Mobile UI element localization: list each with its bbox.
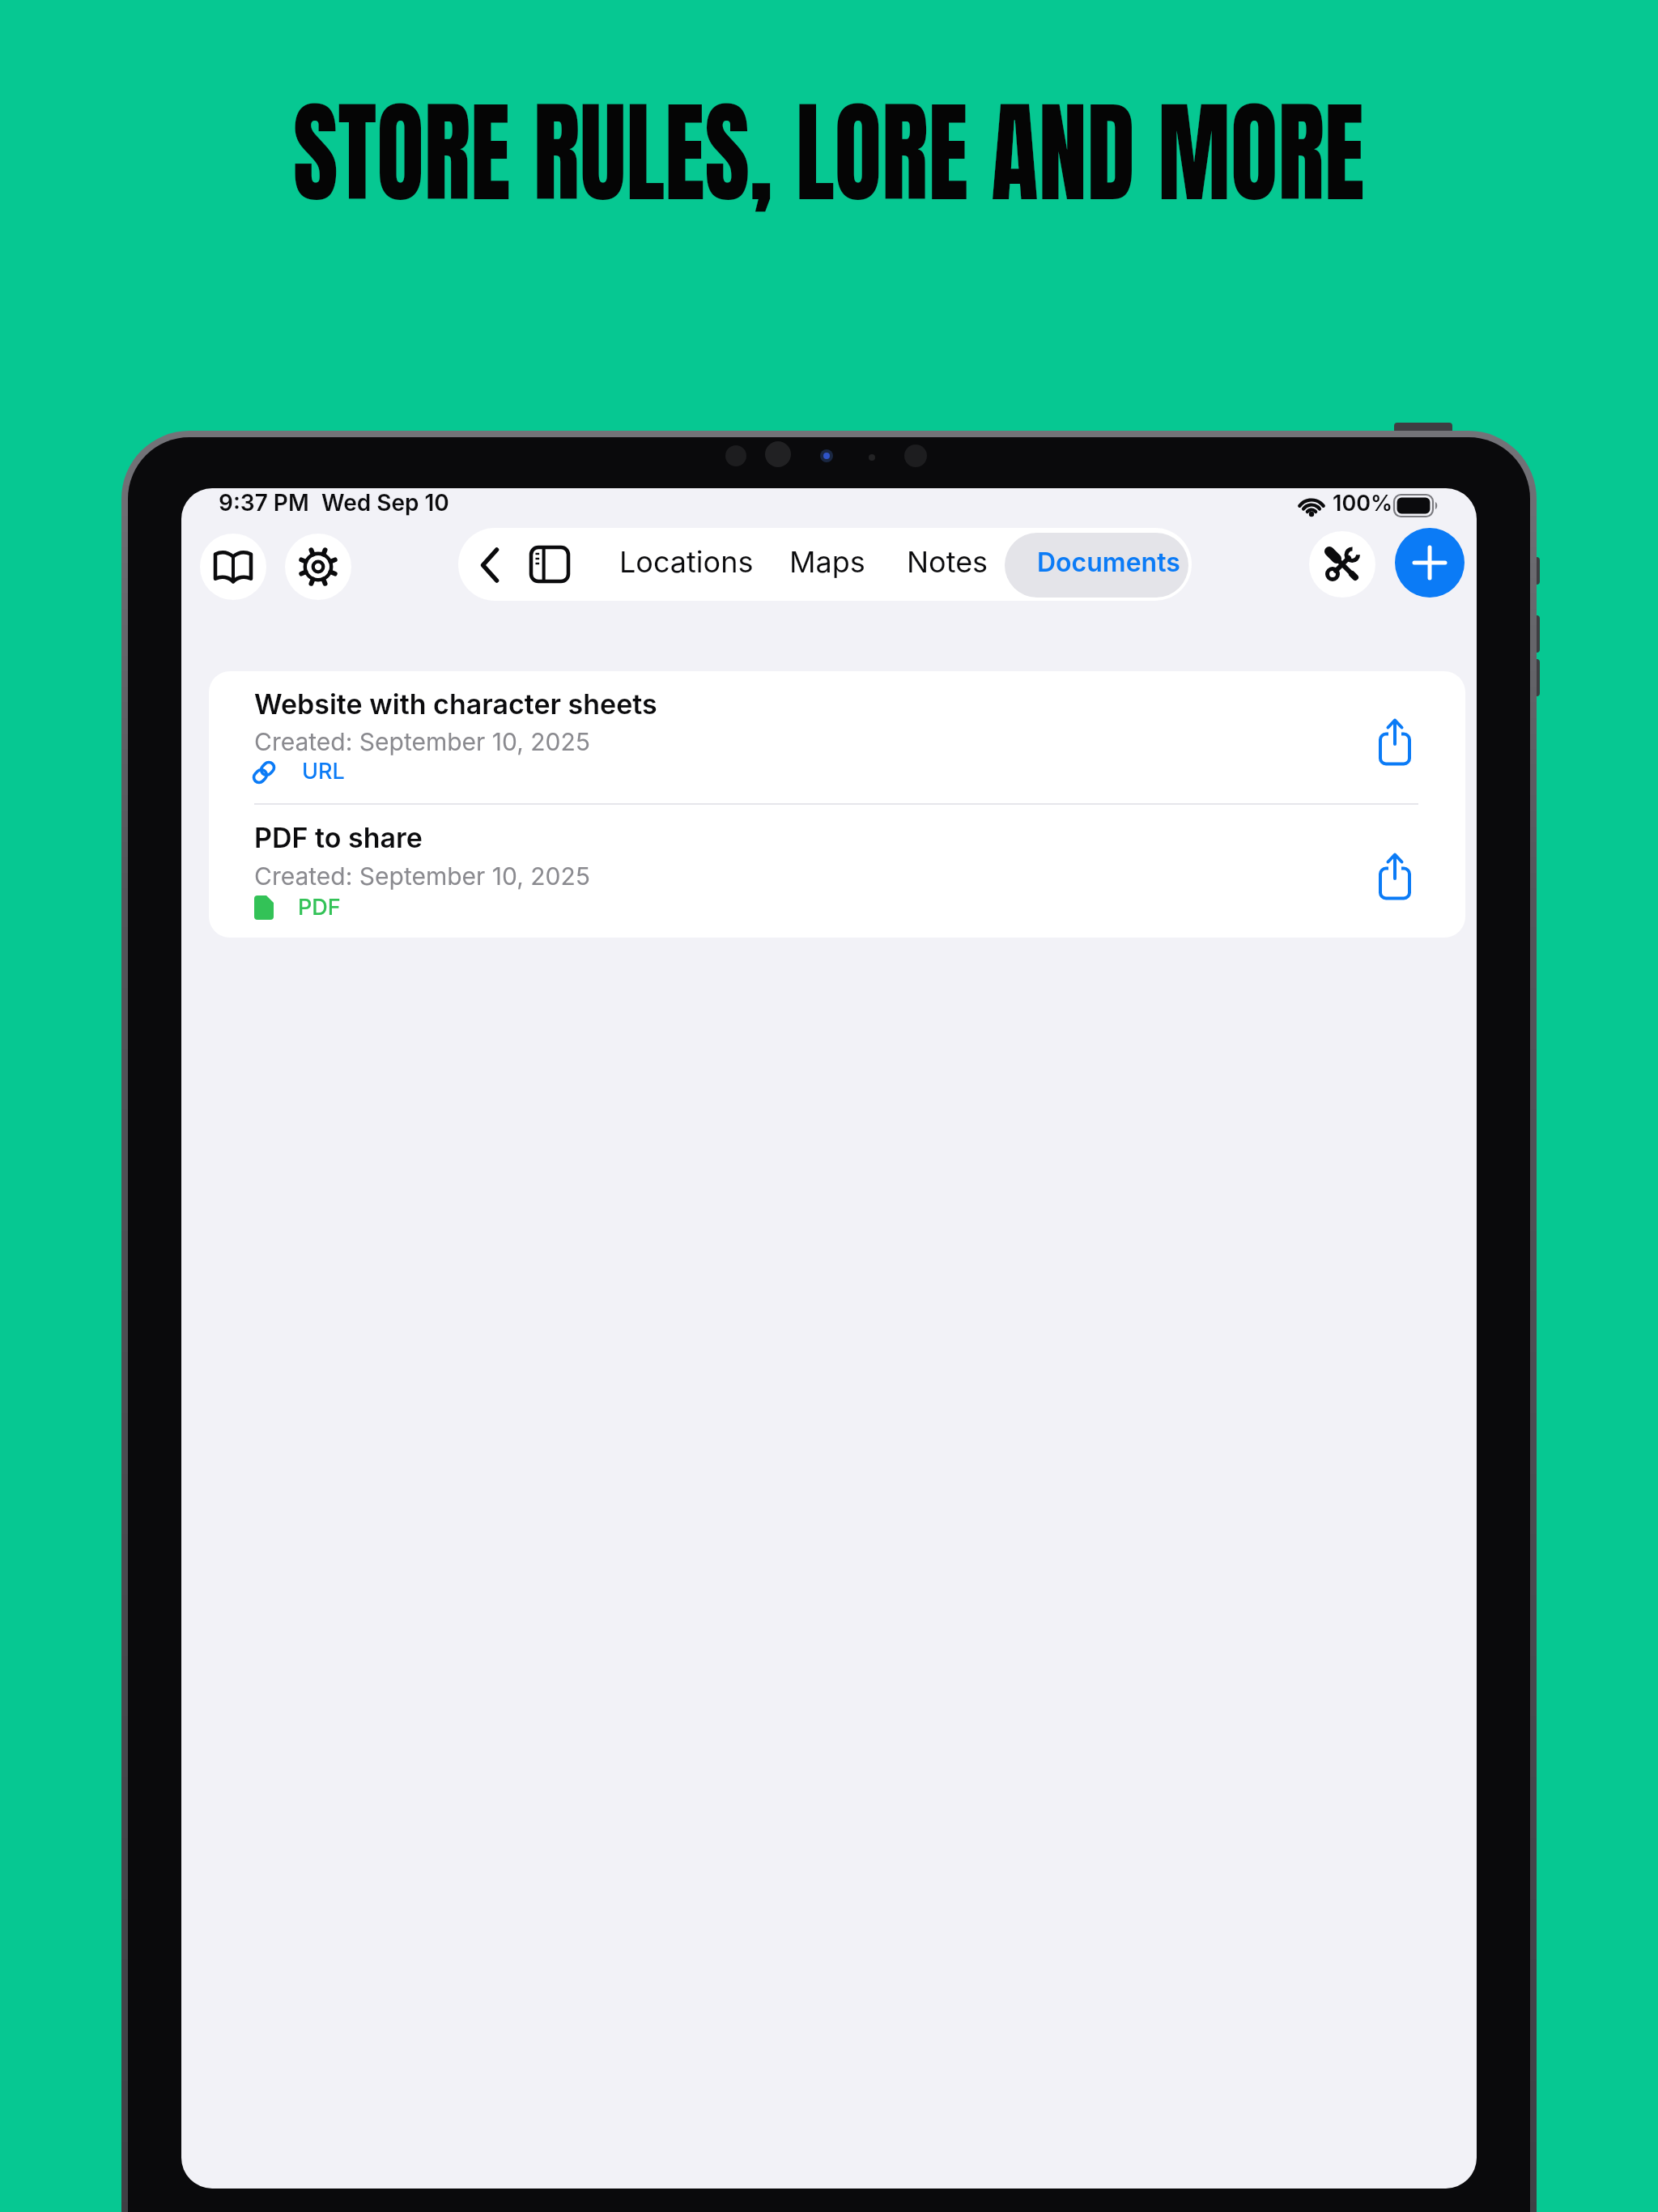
- staticText: Website with character sheets: [254, 687, 657, 721]
- staticText: URL: [302, 758, 345, 785]
- staticText: 9:37 PM: [219, 489, 309, 517]
- staticText: PDF to share: [254, 821, 423, 854]
- staticText: Documents: [1037, 547, 1180, 578]
- staticText: Wed Sep 10: [321, 489, 449, 517]
- staticText: STORE RULES, LORE AND MORE: [293, 70, 1365, 236]
- staticText: Maps: [789, 544, 865, 580]
- staticText: Notes: [907, 544, 988, 580]
- staticText: Created: September 10, 2025: [254, 727, 590, 756]
- staticText: PDF: [298, 894, 341, 921]
- staticText: Created: September 10, 2025: [254, 861, 590, 891]
- staticText: Locations: [619, 544, 754, 580]
- staticText: 100%: [1333, 490, 1393, 517]
